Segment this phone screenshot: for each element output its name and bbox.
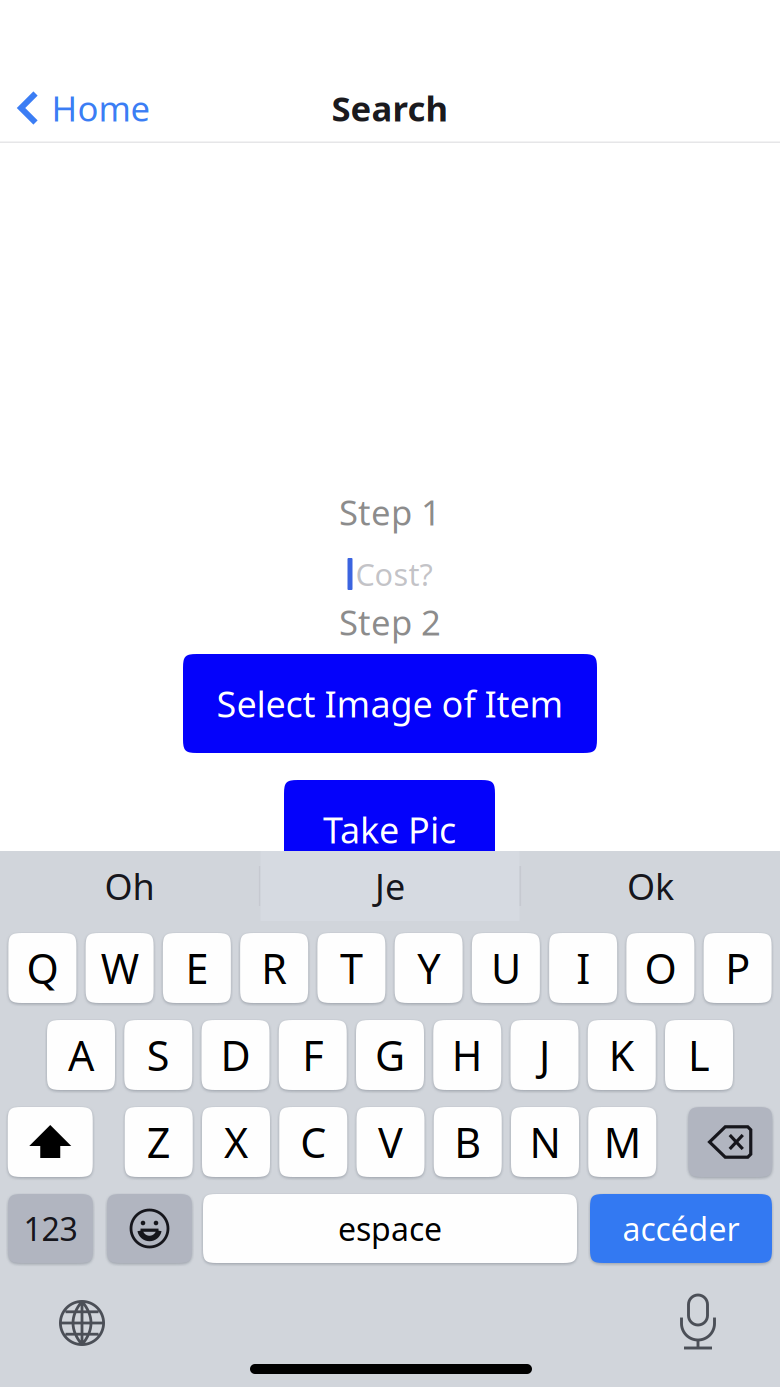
staticText: D	[220, 1028, 250, 1082]
staticText: B	[454, 1115, 481, 1169]
button[interactable]: Emoji	[107, 1194, 192, 1263]
button[interactable]: D	[201, 1020, 269, 1090]
button[interactable]: W	[86, 933, 154, 1003]
staticText: Je	[375, 862, 405, 910]
button[interactable]: M	[588, 1107, 656, 1177]
staticText: Q	[26, 941, 58, 995]
button[interactable]: Dictate	[665, 1292, 731, 1354]
staticText: 123	[23, 1207, 77, 1250]
button[interactable]: 123	[8, 1194, 93, 1263]
staticText: F	[302, 1028, 323, 1082]
button[interactable]: A	[47, 1020, 115, 1090]
staticText: W	[101, 941, 139, 995]
staticText: K	[609, 1028, 635, 1082]
button[interactable]: U	[472, 933, 540, 1003]
button[interactable]: H	[433, 1020, 501, 1090]
button[interactable]: R	[240, 933, 308, 1003]
button[interactable]: V	[356, 1107, 424, 1177]
staticText: L	[688, 1028, 710, 1082]
button[interactable]: Z	[125, 1107, 193, 1177]
staticText: Oh	[104, 862, 154, 910]
button[interactable]: C	[279, 1107, 347, 1177]
staticText: X	[224, 1115, 248, 1169]
staticText: Z	[147, 1115, 171, 1169]
button[interactable]: Ok	[521, 851, 780, 921]
staticText: N	[529, 1115, 560, 1169]
staticText: S	[147, 1028, 170, 1082]
staticText: T	[340, 941, 363, 995]
staticText: Y	[417, 941, 440, 995]
staticText: P	[725, 941, 750, 995]
button[interactable]: Delete	[688, 1107, 772, 1177]
button[interactable]: J	[510, 1020, 578, 1090]
button[interactable]: espace	[203, 1194, 577, 1263]
staticText: E	[185, 941, 208, 995]
staticText: Ok	[627, 862, 674, 910]
button[interactable]: F	[279, 1020, 347, 1090]
staticText: Take Pic	[323, 806, 456, 853]
button[interactable]: Select Image of Item	[183, 654, 597, 753]
button[interactable]: X	[202, 1107, 270, 1177]
button[interactable]: T	[317, 933, 385, 1003]
button[interactable]: Y	[395, 933, 463, 1003]
staticText: Step 1	[339, 489, 441, 535]
button[interactable]: K	[588, 1020, 656, 1090]
staticText: C	[300, 1115, 326, 1169]
button[interactable]: B	[434, 1107, 502, 1177]
button[interactable]: Q	[8, 933, 76, 1003]
button[interactable]: accéder	[590, 1194, 772, 1263]
button[interactable]: P	[704, 933, 772, 1003]
button[interactable]: Home	[0, 73, 150, 143]
button[interactable]: N	[511, 1107, 579, 1177]
button[interactable]: E	[163, 933, 231, 1003]
staticText: Search	[331, 85, 448, 131]
staticText: H	[452, 1028, 483, 1082]
staticText: I	[576, 941, 590, 995]
button[interactable]: Je	[260, 851, 519, 921]
button[interactable]: L	[665, 1020, 733, 1090]
button[interactable]: S	[124, 1020, 192, 1090]
staticText: Select Image of Item	[216, 680, 563, 727]
staticText: A	[68, 1028, 94, 1082]
staticText: V	[378, 1115, 403, 1169]
staticText: R	[261, 941, 287, 995]
button[interactable]: Oh	[0, 851, 259, 921]
staticText: G	[375, 1028, 405, 1082]
staticText: U	[491, 941, 521, 995]
staticText: O	[644, 941, 676, 995]
staticText: espace	[338, 1207, 442, 1250]
button[interactable]: G	[356, 1020, 424, 1090]
staticText: Cost?	[355, 554, 432, 594]
button[interactable]: Next keyboard	[49, 1292, 115, 1354]
button[interactable]: Take Pic	[284, 780, 495, 879]
staticText: accéder	[622, 1207, 739, 1250]
staticText: Home	[51, 85, 150, 131]
staticText: J	[539, 1028, 550, 1082]
button[interactable]: Shift	[8, 1107, 93, 1177]
button[interactable]: I	[549, 933, 617, 1003]
staticText: Step 2	[339, 599, 441, 645]
staticText: M	[604, 1115, 641, 1169]
button[interactable]: O	[626, 933, 694, 1003]
